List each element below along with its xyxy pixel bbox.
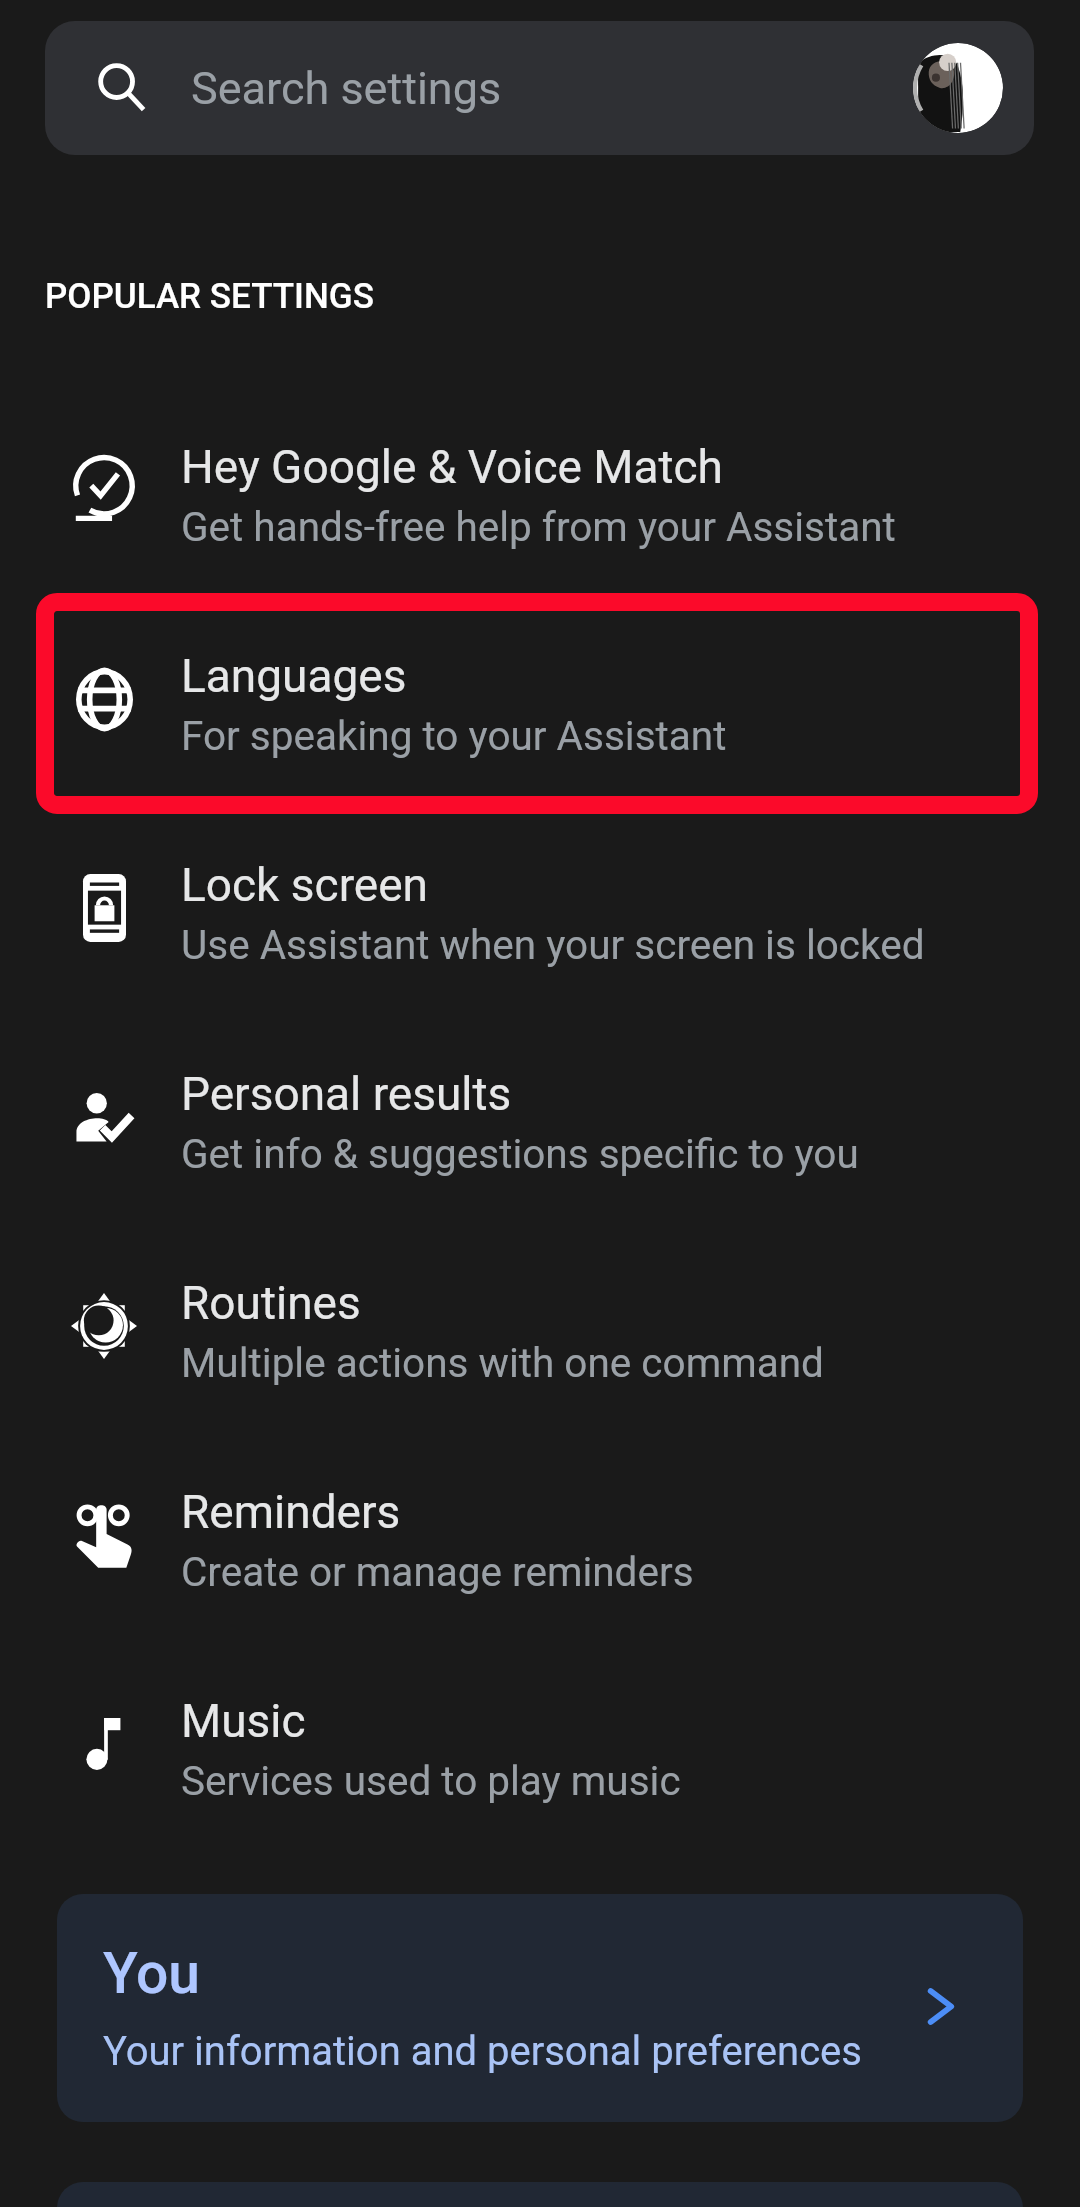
button[interactable]: Lock screen	[0, 798, 1080, 1007]
staticText: Music	[181, 1694, 306, 1748]
staticText: Create or manage reminders	[181, 1548, 694, 1595]
staticText: Get info & suggestions specific to you	[181, 1130, 859, 1177]
staticText: Reminders	[181, 1485, 401, 1539]
button[interactable]: Music	[0, 1634, 1080, 1843]
button[interactable]: Search settings	[45, 21, 1034, 155]
staticText: You	[103, 1940, 201, 2007]
staticText: Get hands-free help from your Assistant	[181, 503, 896, 550]
staticText: POPULAR SETTINGS	[45, 276, 374, 317]
button[interactable]: Routines	[0, 1216, 1080, 1425]
staticText: Hey Google & Voice Match	[181, 440, 723, 494]
button[interactable]: You	[57, 1894, 1023, 2122]
button[interactable]: Languages	[0, 589, 1080, 798]
staticText: Your information and personal preference…	[103, 2028, 862, 2075]
staticText: Use Assistant when your screen is locked	[181, 921, 925, 968]
button[interactable]: Reminders	[0, 1425, 1080, 1634]
button[interactable]: Account	[913, 43, 1003, 133]
staticText: For speaking to your Assistant	[181, 712, 727, 759]
staticText: Search settings	[191, 62, 502, 115]
button[interactable]: Hey Google & Voice Match	[0, 380, 1080, 589]
staticText: Routines	[181, 1276, 361, 1330]
staticText: Personal results	[181, 1067, 512, 1121]
staticText: Languages	[181, 649, 407, 703]
staticText: Services used to play music	[181, 1757, 681, 1804]
staticText: Multiple actions with one command	[181, 1339, 824, 1386]
staticText: Lock screen	[181, 858, 428, 912]
button[interactable]: Personal results	[0, 1007, 1080, 1216]
